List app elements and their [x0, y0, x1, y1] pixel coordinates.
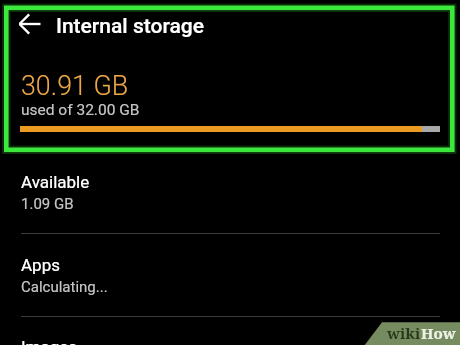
- staticText: Images: [21, 337, 78, 345]
- staticText: Internal storage: [56, 14, 205, 39]
- button[interactable]: Images: [0, 319, 460, 345]
- staticText: Available: [21, 172, 90, 192]
- staticText: How: [421, 323, 456, 344]
- staticText: 30.91 GB: [21, 70, 129, 101]
- button[interactable]: Apps: [0, 237, 460, 319]
- staticText: used of 32.00 GB: [21, 101, 140, 119]
- button[interactable]: Navigate back: [10, 4, 50, 44]
- staticText: 1.09 GB: [21, 195, 74, 213]
- staticText: Apps: [21, 255, 60, 275]
- staticText: wiki: [387, 323, 421, 344]
- staticText: Calculating...: [21, 278, 108, 296]
- button[interactable]: Available: [0, 154, 460, 236]
